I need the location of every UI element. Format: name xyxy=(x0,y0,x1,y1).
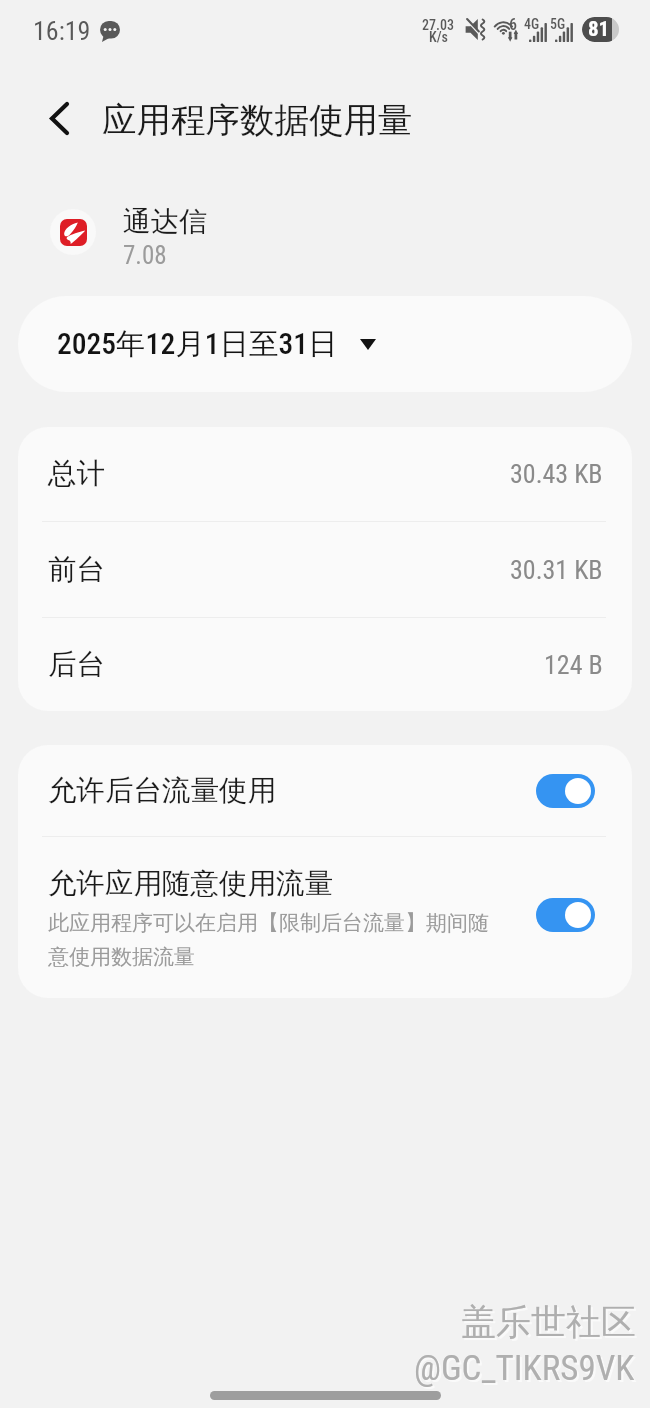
button[interactable]: 前台 xyxy=(18,522,632,617)
staticText: 6 xyxy=(509,15,518,34)
staticText: 27.03 xyxy=(422,17,454,33)
staticText: 总计 xyxy=(48,456,105,492)
staticText: 应用程序数据使用量 xyxy=(102,99,413,142)
staticText: 后台 xyxy=(48,647,105,683)
staticText: 4G xyxy=(524,16,540,32)
staticText: 7.08 xyxy=(123,241,167,270)
button[interactable]: 允许后台流量使用 xyxy=(18,745,632,836)
button[interactable]: 2025年12月1日至31日 xyxy=(18,296,632,392)
staticText: 30.43 KB xyxy=(510,459,603,489)
staticText: 允许应用随意使用流量 xyxy=(48,866,333,902)
button[interactable]: Toggle on xyxy=(536,774,595,808)
staticText: 盖乐世社区 xyxy=(463,1302,638,1346)
button[interactable]: 后台 xyxy=(18,618,632,711)
button[interactable]: Toggle on xyxy=(536,898,595,932)
staticText: 124 B xyxy=(544,650,603,680)
staticText: 81 xyxy=(588,17,610,42)
staticText: 盖乐世社区 xyxy=(461,1300,636,1344)
staticText: 16:19 xyxy=(33,16,91,46)
staticText: 30.31 KB xyxy=(510,555,603,585)
staticText: 5G xyxy=(550,16,566,32)
button[interactable]: 总计 xyxy=(18,427,632,521)
staticText: @GC_TIKRS9VK xyxy=(414,1348,635,1389)
staticText: 2025年12月1日至31日 xyxy=(57,326,338,363)
staticText: @GC_TIKRS9VK xyxy=(416,1350,637,1391)
button[interactable]: 允许应用随意使用流量 xyxy=(18,837,632,998)
staticText: 前台 xyxy=(48,552,105,588)
staticText: 此应用程序可以在启用【限制后台流量】期间随 意使用数据流量 xyxy=(48,910,489,970)
staticText: 通达信 xyxy=(123,204,207,239)
staticText: K/s xyxy=(429,29,448,45)
staticText: 允许后台流量使用 xyxy=(48,773,276,809)
button[interactable]: Back xyxy=(31,90,87,146)
